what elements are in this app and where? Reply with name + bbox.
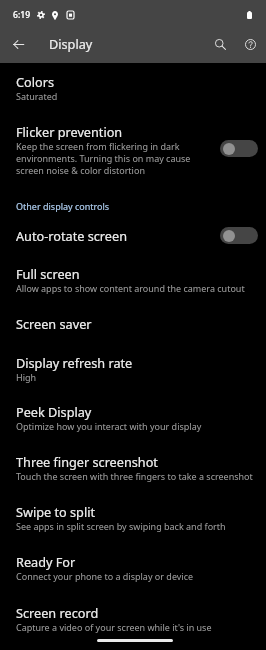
staticText: Screen record (16, 604, 99, 621)
button[interactable]: Toggle Auto-rotate screen (220, 227, 258, 244)
staticText: Ready For (16, 553, 76, 570)
button[interactable]: Auto-rotate screen (0, 217, 266, 255)
staticText: Screen saver (16, 315, 92, 332)
staticText: Display refresh rate (16, 354, 133, 371)
staticText: Peek Display (16, 403, 92, 420)
staticText: Optimize how you interact with your disp… (16, 420, 202, 432)
button[interactable]: Display refresh rate (0, 344, 266, 393)
button[interactable]: Three finger screenshot (0, 443, 266, 493)
button[interactable]: Peek Display (0, 393, 266, 443)
staticText: Three finger screenshot (16, 453, 158, 470)
staticText: Capture a video of your screen while it'… (16, 621, 212, 633)
staticText: Touch the screen with three fingers to t… (16, 470, 253, 482)
staticText: Colors (16, 73, 54, 90)
staticText: High (16, 371, 37, 383)
staticText: Other display controls (16, 200, 110, 212)
button[interactable]: Full screen (0, 255, 266, 305)
button[interactable]: Navigate up (8, 34, 28, 54)
button[interactable]: Colors (0, 63, 266, 113)
button[interactable]: Ready For (0, 543, 266, 594)
button[interactable]: Screen record (0, 594, 266, 638)
staticText: Display (49, 35, 93, 52)
staticText: Swipe to split (16, 503, 96, 520)
staticText: Saturated (16, 90, 58, 102)
button[interactable]: Help (236, 30, 264, 58)
button[interactable]: Toggle Flicker prevention (220, 140, 258, 157)
staticText: Auto-rotate screen (16, 227, 127, 244)
button[interactable]: Screen saver (0, 305, 266, 344)
staticText: Keep the screen from flickering in dark … (16, 140, 206, 176)
staticText: 6:19 (13, 9, 31, 21)
button[interactable]: Swipe to split (0, 493, 266, 543)
button[interactable]: Search (206, 30, 234, 58)
staticText: See apps in split screen by swiping back… (16, 520, 226, 532)
staticText: Flicker prevention (16, 123, 123, 140)
staticText: Connect your phone to a display or devic… (16, 570, 194, 582)
staticText: Allow apps to show content around the ca… (16, 282, 245, 294)
staticText: Full screen (16, 265, 80, 282)
button[interactable]: Flicker prevention (0, 113, 266, 189)
